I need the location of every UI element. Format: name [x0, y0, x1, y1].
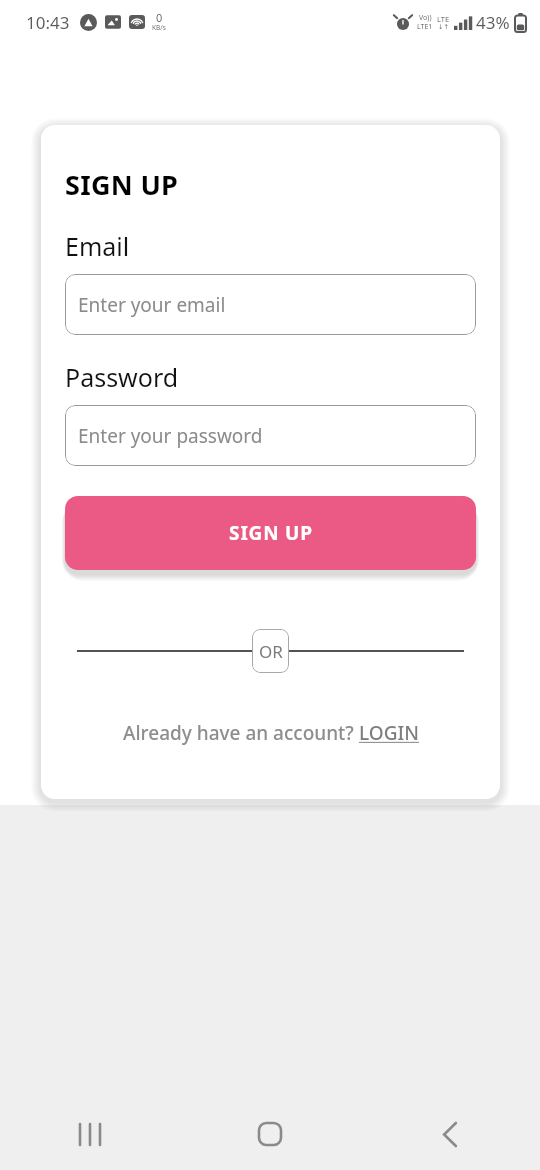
button[interactable]: Back [360, 1098, 540, 1170]
staticText: LTE1 [417, 22, 433, 32]
button[interactable]: Home [180, 1098, 360, 1170]
button[interactable]: Enter your password [65, 405, 476, 466]
button[interactable]: Recent apps [0, 1098, 180, 1170]
staticText: LOGIN [359, 720, 419, 746]
staticText: LTE [437, 14, 450, 24]
staticText: Enter your password [78, 423, 263, 449]
staticText: Enter your email [78, 292, 226, 318]
staticText: Password [65, 360, 179, 394]
button[interactable]: Enter your email [65, 274, 476, 335]
staticText: KB/s [152, 23, 166, 32]
staticText: OR [259, 640, 283, 663]
staticText: Already have an account? [123, 720, 359, 746]
staticText: SIGN UP [65, 166, 179, 203]
staticText: 43% [476, 11, 510, 34]
staticText: 10:43 [26, 11, 70, 34]
staticText: Email [65, 229, 130, 263]
staticText: 0 [156, 10, 163, 25]
staticText: SIGN UP [229, 520, 313, 546]
staticText: Vo)) [419, 13, 432, 23]
button[interactable]: LOGIN [359, 720, 419, 746]
button[interactable]: SIGN UP [65, 496, 476, 570]
staticText: ↓↑ [438, 23, 449, 31]
